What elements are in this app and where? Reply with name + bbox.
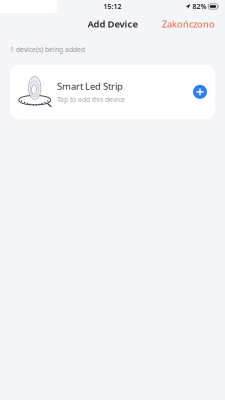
- staticText: Zakończono: [162, 18, 215, 30]
- button[interactable]: Add Smart Led Strip: [188, 80, 212, 104]
- staticText: 82%: [192, 2, 206, 11]
- button[interactable]: Smart Led Strip: [10, 65, 215, 119]
- staticText: Add Device: [87, 18, 137, 30]
- staticText: Tap to add this device: [57, 95, 125, 104]
- staticText: Smart Led Strip: [57, 80, 123, 92]
- staticText: 1 device(s) being added: [10, 45, 85, 54]
- staticText: 15:12: [103, 2, 121, 11]
- button[interactable]: Zakończono: [156, 13, 221, 35]
